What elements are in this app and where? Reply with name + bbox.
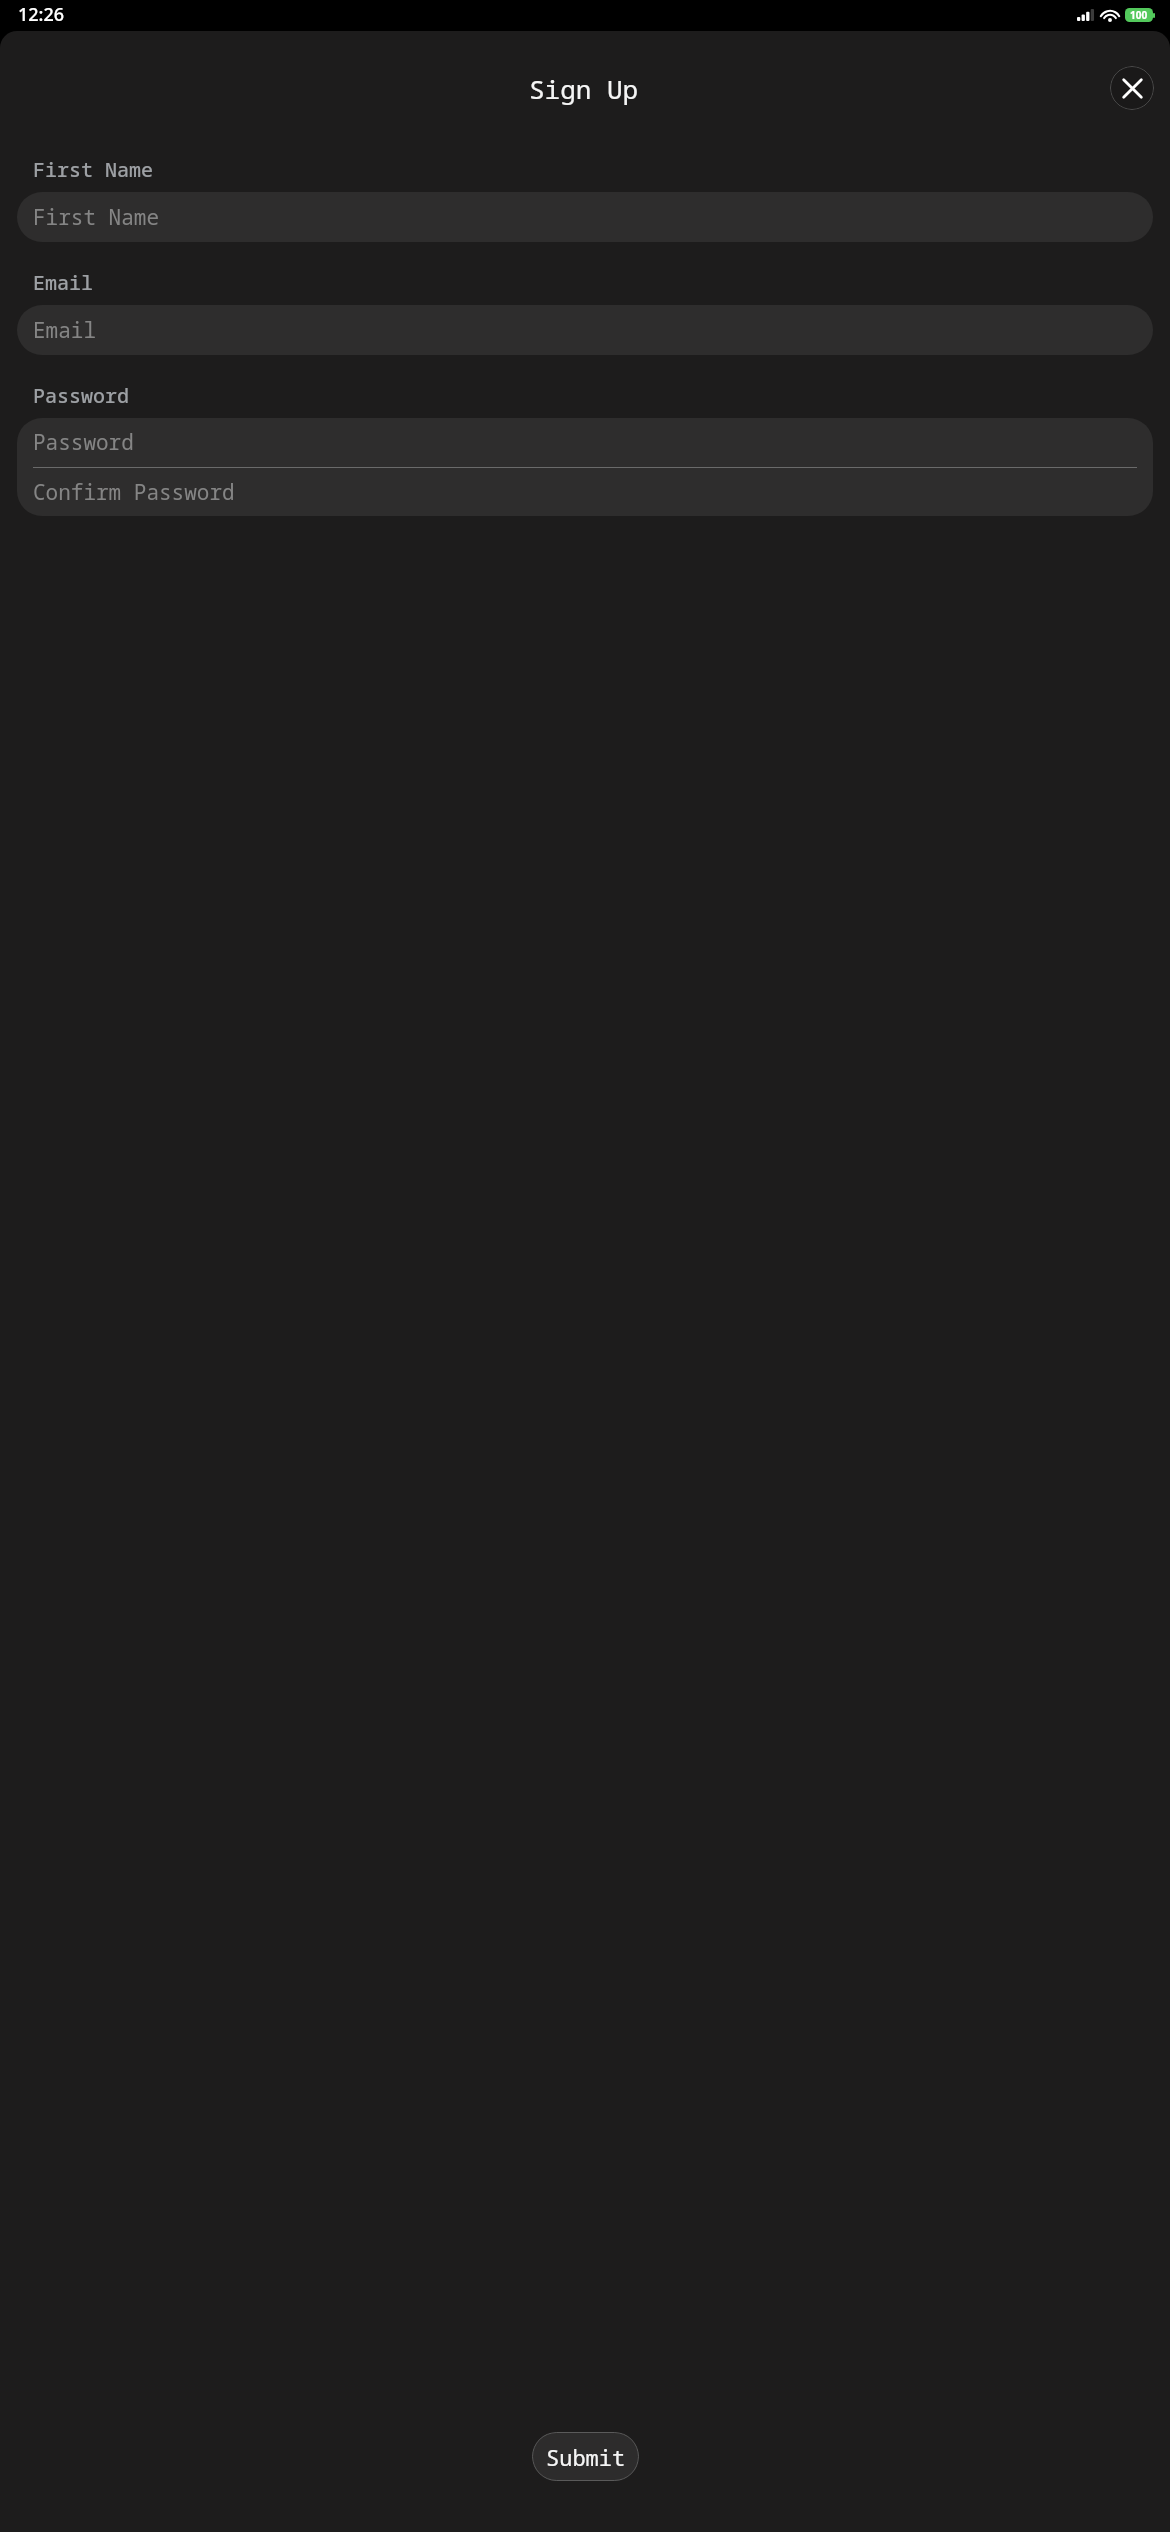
button[interactable]: Password xyxy=(17,418,1153,467)
button[interactable]: First Name xyxy=(17,192,1153,242)
staticText: Password xyxy=(33,382,129,409)
staticText: Confirm Password xyxy=(33,478,235,507)
staticText: Email xyxy=(33,316,96,345)
staticText: First Name xyxy=(33,203,159,232)
staticText: First Name xyxy=(33,156,153,183)
staticText: Password xyxy=(33,428,134,457)
button[interactable]: Close xyxy=(1110,66,1154,110)
staticText: Submit xyxy=(546,2442,626,2472)
staticText: 12:26 xyxy=(18,2,65,27)
staticText: 100 xyxy=(1130,8,1148,22)
staticText: Email xyxy=(33,269,93,296)
button[interactable]: Confirm Password xyxy=(17,468,1153,516)
button[interactable]: Submit xyxy=(532,2432,639,2481)
staticText: Sign Up xyxy=(529,71,639,106)
button[interactable]: Email xyxy=(17,305,1153,355)
